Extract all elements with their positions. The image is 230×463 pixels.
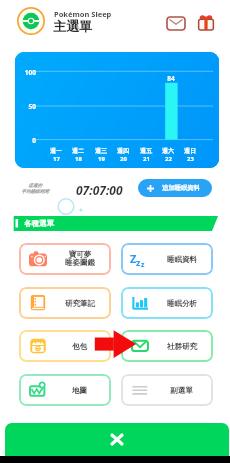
- staticText: z: [141, 260, 145, 270]
- staticText: 週五: [140, 147, 152, 155]
- button[interactable]: 睡眠分析: [121, 287, 213, 319]
- staticText: 寶可夢 睡姿圖鑑: [65, 250, 95, 268]
- staticText: 地圖: [72, 386, 87, 395]
- staticText: 追加睡眠資料: [162, 184, 200, 192]
- button[interactable]: Mail: [165, 14, 187, 32]
- button[interactable]: 寶可夢 睡姿圖鑑: [19, 243, 111, 275]
- staticText: 23: [187, 155, 194, 163]
- button[interactable]: 社群研究: [121, 330, 213, 362]
- staticText: 18: [75, 155, 82, 163]
- staticText: 20: [120, 155, 127, 163]
- button[interactable]: 追加睡眠資料: [138, 179, 212, 197]
- button[interactable]: 研究筆記: [19, 287, 111, 319]
- staticText: 週四: [117, 147, 129, 155]
- staticText: 週日: [184, 147, 196, 155]
- staticText: 研究筆記: [65, 299, 95, 308]
- button[interactable]: 副選單: [121, 374, 213, 406]
- button[interactable]: Z: [121, 243, 213, 275]
- staticText: 17: [53, 155, 60, 163]
- staticText: 週三: [95, 147, 107, 155]
- staticText: 週一: [50, 147, 62, 155]
- staticText: 社群研究: [167, 342, 197, 351]
- button[interactable]: 地圖: [19, 374, 111, 406]
- staticText: 50: [15, 102, 36, 111]
- staticText: 包包: [72, 342, 87, 351]
- staticText: 睡眠分析: [167, 299, 197, 308]
- button[interactable]: Close: [5, 423, 229, 456]
- staticText: 19: [98, 155, 105, 163]
- staticText: Pokémon Sleep: [54, 9, 112, 19]
- staticText: 21: [143, 155, 150, 163]
- staticText: 84: [160, 74, 182, 83]
- staticText: 平均睡眠時間: [21, 189, 49, 195]
- button[interactable]: Gifts: [196, 13, 216, 32]
- staticText: 週二: [72, 147, 84, 155]
- staticText: 07:07:00: [76, 182, 123, 198]
- staticText: z: [136, 256, 141, 268]
- staticText: 100: [15, 68, 36, 77]
- staticText: 副選單: [170, 386, 193, 395]
- staticText: 22: [165, 155, 172, 163]
- button[interactable]: 包包: [19, 330, 111, 362]
- staticText: 主選單: [53, 18, 92, 34]
- staticText: 週六: [162, 147, 174, 155]
- staticText: 各種選單: [24, 219, 54, 228]
- staticText: Z: [130, 251, 137, 266]
- staticText: 0: [15, 136, 36, 145]
- staticText: 睡眠資料: [167, 255, 197, 264]
- staticText: 這週的: [28, 183, 42, 189]
